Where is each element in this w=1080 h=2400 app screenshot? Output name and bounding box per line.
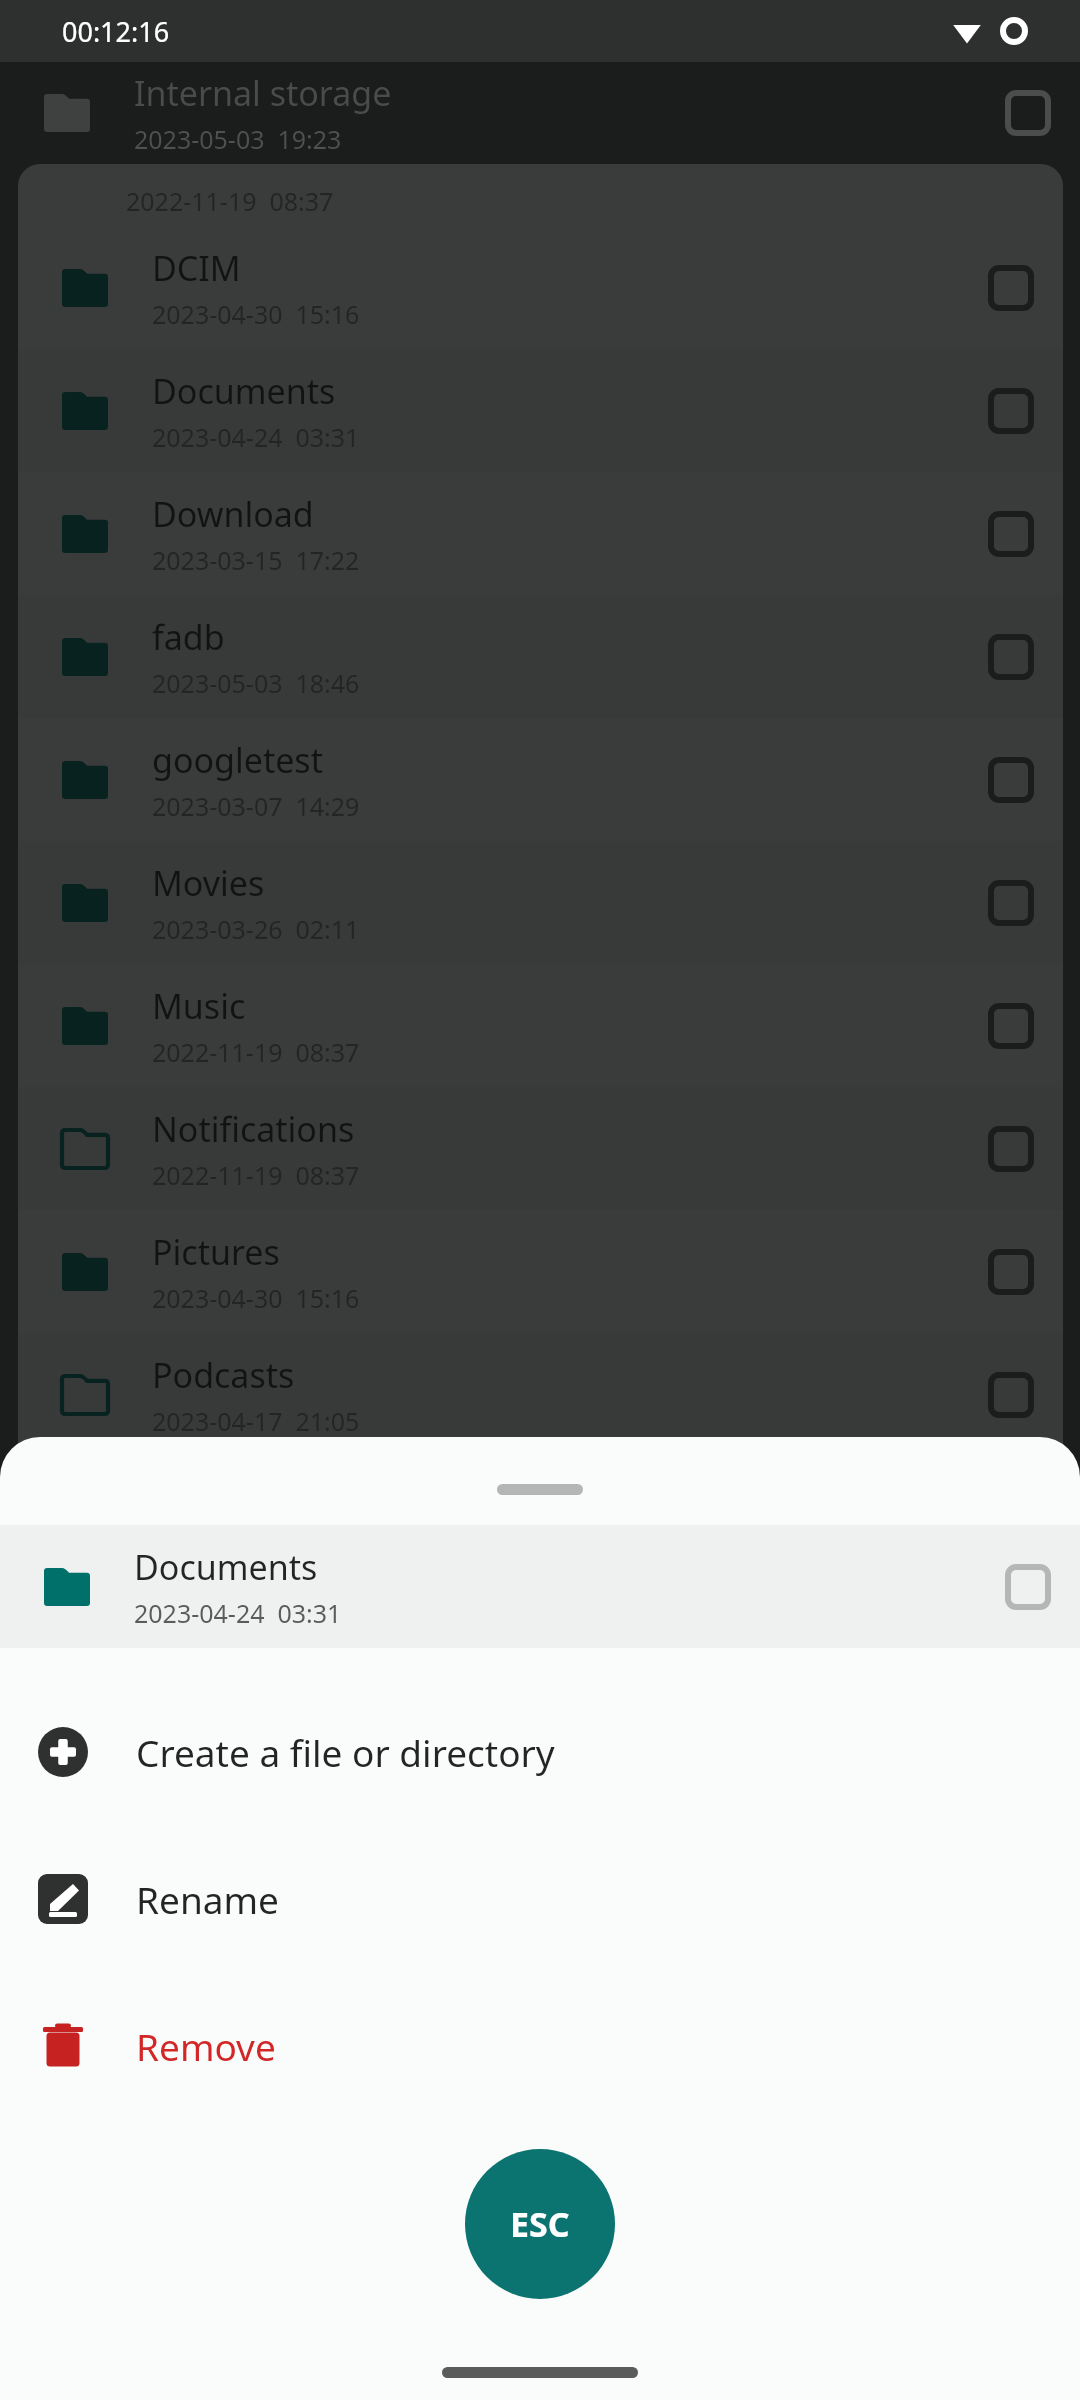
button[interactable]: fadb <box>18 595 1063 718</box>
button[interactable]: Create a file or directory <box>0 1678 1080 1825</box>
staticText: 2023-04-30 15:16 <box>152 297 360 331</box>
staticText: Download <box>152 491 314 537</box>
button[interactable]: googletest <box>18 718 1063 841</box>
staticText: Remove <box>136 2021 276 2071</box>
staticText: 2023-04-17 21:05 <box>152 1404 360 1438</box>
staticText: googletest <box>152 737 323 783</box>
button[interactable]: Documents <box>18 349 1063 472</box>
staticText: 2023-05-03 18:46 <box>152 666 360 700</box>
staticText: Create a file or directory <box>136 1727 555 1777</box>
button[interactable]: DCIM <box>18 226 1063 349</box>
button[interactable]: Select Notifications <box>963 1101 1059 1197</box>
button[interactable]: ESC <box>465 2149 615 2299</box>
staticText: 2022-11-19 08:37 <box>152 1158 360 1192</box>
staticText: Notifications <box>152 1106 355 1152</box>
button[interactable]: Internal storage <box>0 62 1080 164</box>
staticText: Internal storage <box>134 70 392 116</box>
button[interactable]: Select Podcasts <box>963 1347 1059 1443</box>
staticText: 2022-11-19 08:37 <box>152 1035 360 1069</box>
button[interactable]: Select Music <box>963 978 1059 1074</box>
button[interactable]: Select fadb <box>963 609 1059 705</box>
button[interactable]: Select Documents <box>980 1539 1076 1635</box>
button[interactable]: Select Pictures <box>963 1224 1059 1320</box>
button[interactable]: Notifications <box>18 1087 1063 1210</box>
staticText: Movies <box>152 860 265 906</box>
button[interactable]: Download <box>18 472 1063 595</box>
staticText: 2023-03-26 02:11 <box>152 912 360 946</box>
button[interactable]: Movies <box>18 841 1063 964</box>
staticText: Podcasts <box>152 1352 295 1398</box>
button[interactable]: Select Download <box>963 486 1059 582</box>
staticText: 2023-03-15 17:22 <box>152 543 360 577</box>
button[interactable]: Remove <box>0 1972 1080 2119</box>
staticText: Documents <box>134 1544 318 1590</box>
staticText: fadb <box>152 614 225 660</box>
staticText: 2023-04-24 03:31 <box>134 1596 342 1630</box>
button[interactable]: Select Internal storage <box>980 65 1076 161</box>
button[interactable]: Documents <box>0 1525 1080 1648</box>
staticText: DCIM <box>152 245 241 291</box>
button[interactable]: Music <box>18 964 1063 1087</box>
staticText: ESC <box>510 2201 570 2247</box>
button[interactable]: Select googletest <box>963 732 1059 828</box>
button[interactable]: Select Movies <box>963 855 1059 951</box>
staticText: 2022-11-19 08:37 <box>126 184 334 218</box>
button[interactable]: Select Documents <box>963 363 1059 459</box>
staticText: 2023-05-03 19:23 <box>134 122 342 156</box>
staticText: Pictures <box>152 1229 280 1275</box>
staticText: Music <box>152 983 246 1029</box>
staticText: 2023-04-30 15:16 <box>152 1281 360 1315</box>
staticText: 2023-03-07 14:29 <box>152 789 360 823</box>
button[interactable]: Rename <box>0 1825 1080 1972</box>
button[interactable]: Pictures <box>18 1210 1063 1333</box>
button[interactable]: Podcasts <box>18 1333 1063 1456</box>
staticText: 00:12:16 <box>62 13 170 50</box>
staticText: 2023-04-24 03:31 <box>152 420 360 454</box>
staticText: Rename <box>136 1874 279 1924</box>
button[interactable]: Select DCIM <box>963 240 1059 336</box>
staticText: Documents <box>152 368 336 414</box>
